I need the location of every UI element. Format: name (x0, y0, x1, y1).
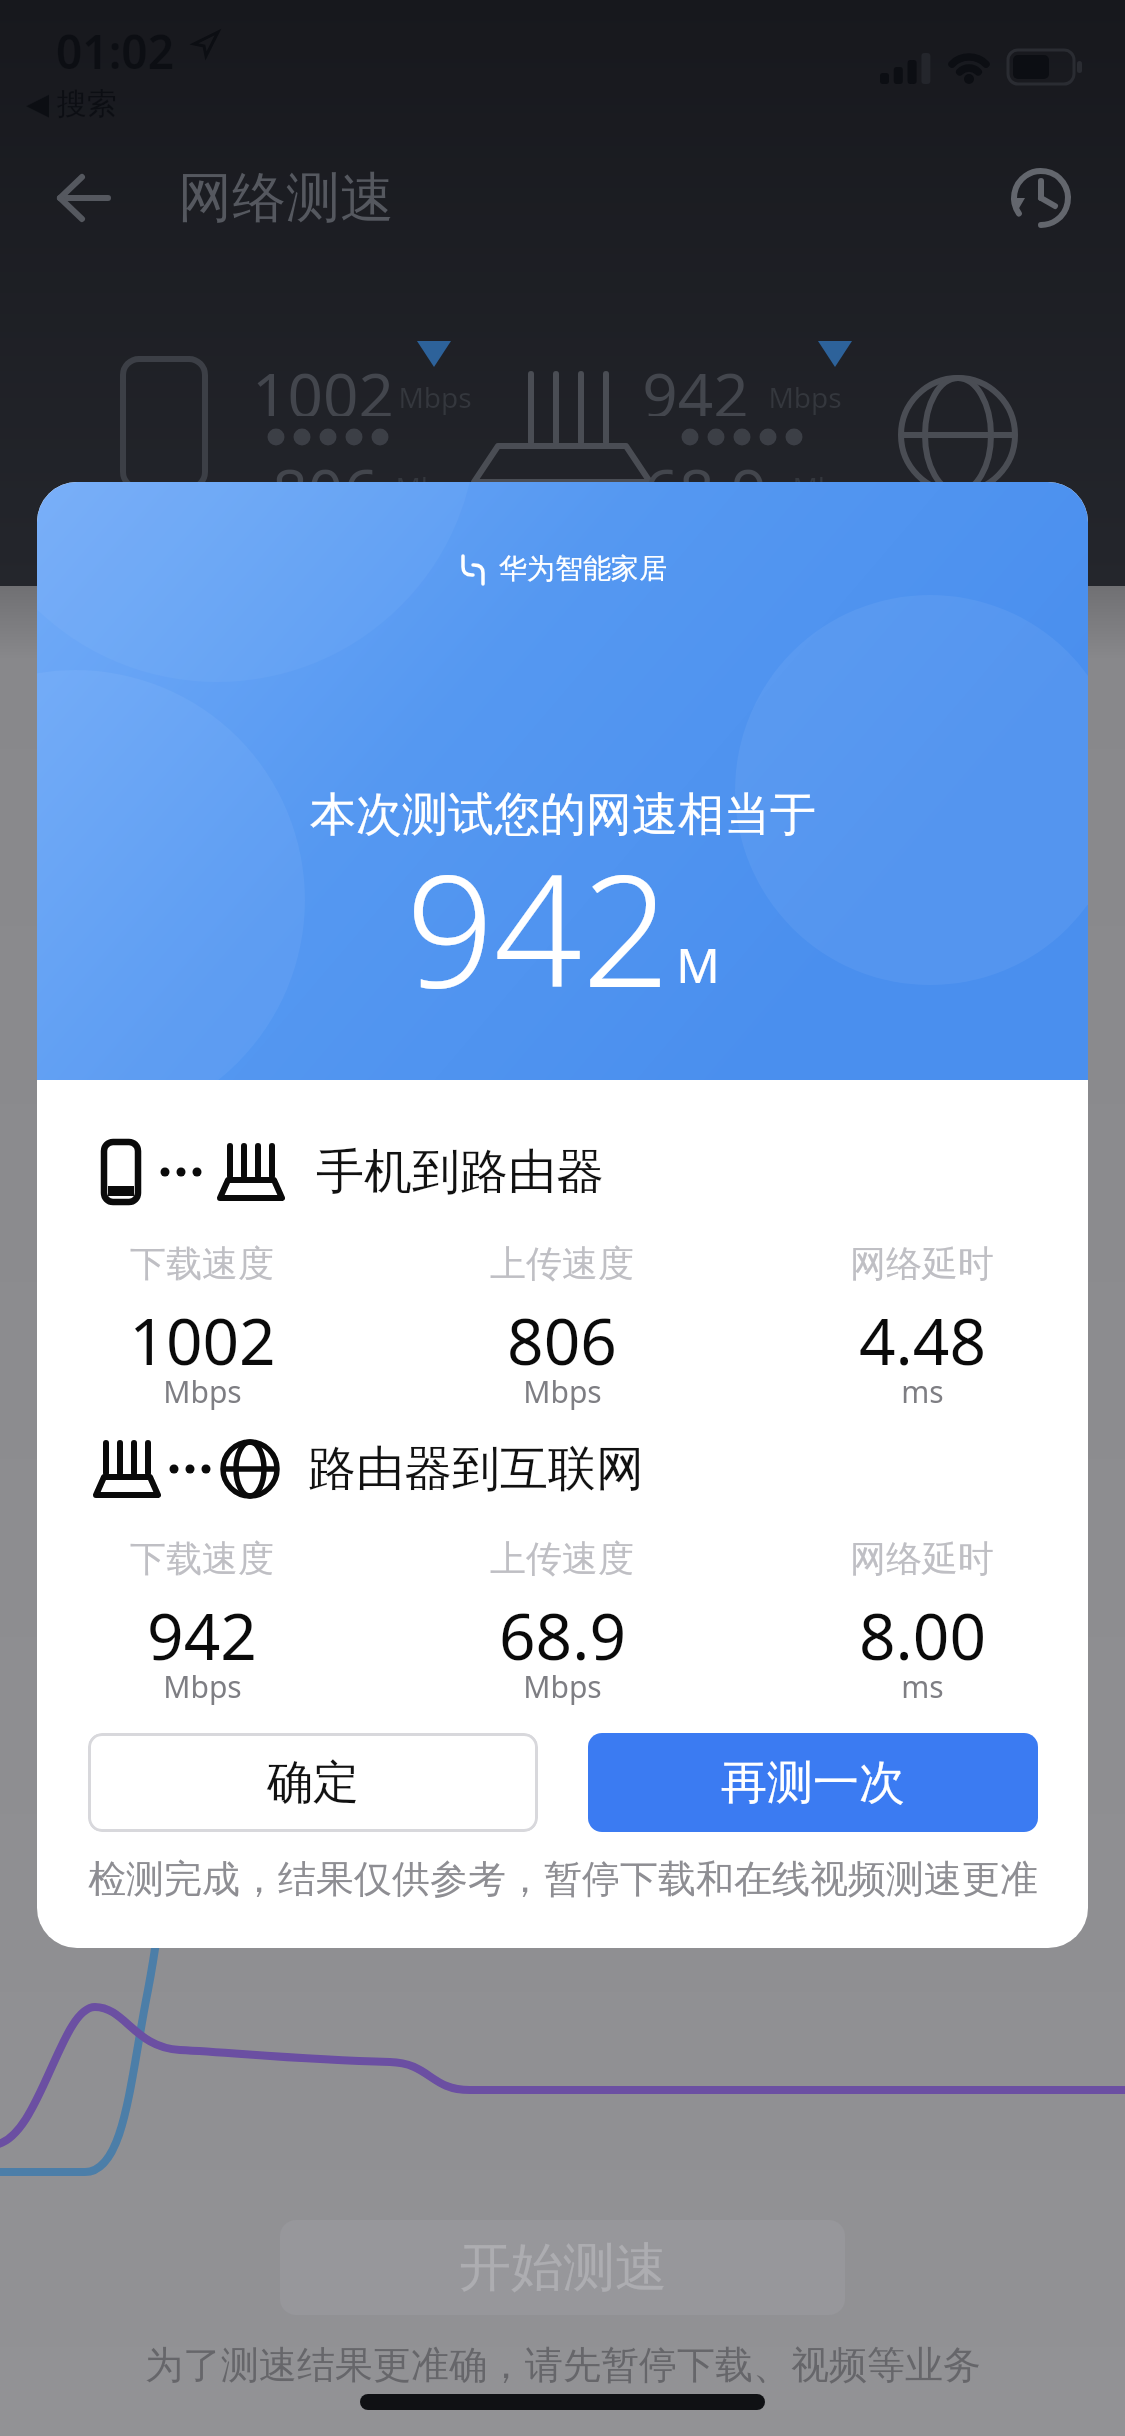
button[interactable]: 开始测速 (280, 2220, 845, 2315)
staticText: Mbps (523, 1371, 602, 1411)
staticText: 1002 (252, 352, 394, 416)
staticText: Mbps (395, 468, 469, 502)
staticText: 路由器到互联网 (308, 1439, 644, 1499)
staticText: 确定 (267, 1754, 359, 1812)
staticText: 上传速度 (490, 1241, 634, 1286)
staticText: ms (901, 1371, 944, 1411)
staticText: Mbps (163, 1371, 242, 1411)
staticText: 8.00 (859, 1592, 986, 1672)
staticText: 检测完成，结果仅供参考，暂停下载和在线视频测速更准 (88, 1855, 1038, 1903)
staticText: Mbps (792, 468, 866, 502)
staticText: 942 (147, 1592, 257, 1672)
button[interactable]: 再测一次 (588, 1733, 1038, 1832)
staticText: 本次测试您的网速相当于 (310, 786, 816, 844)
staticText: 网络测速 (178, 164, 394, 232)
staticText: 1002 (129, 1297, 276, 1377)
staticText: 942 (406, 822, 670, 1012)
staticText: 网络延时 (850, 1536, 994, 1581)
staticText: ◀ 搜索 (26, 82, 117, 122)
button[interactable] (1002, 159, 1080, 237)
staticText: 手机到路由器 (316, 1142, 604, 1202)
staticText: 下载速度 (130, 1241, 274, 1286)
staticText: M (676, 932, 720, 997)
staticText: Mbps (523, 1666, 602, 1706)
staticText: Mbps (768, 378, 842, 416)
staticText: 806 (272, 448, 379, 508)
staticText: 再测一次 (721, 1754, 905, 1812)
button[interactable] (46, 160, 122, 236)
staticText: 942 (642, 352, 749, 416)
staticText: 为了测速结果更准确，请先暂停下载、视频等业务 (145, 2341, 981, 2389)
staticText: 68.9 (643, 448, 767, 508)
staticText: 华为智能家居 (499, 551, 667, 586)
staticText: Mbps (163, 1666, 242, 1706)
staticText: 开始测速 (459, 2235, 667, 2301)
staticText: 网络延时 (850, 1241, 994, 1286)
staticText: 68.9 (499, 1592, 626, 1672)
staticText: 上传速度 (490, 1536, 634, 1581)
staticText: 01:02 (56, 20, 174, 70)
staticText: 下载速度 (130, 1536, 274, 1581)
staticText: Mbps (398, 378, 472, 416)
staticText: ms (901, 1666, 944, 1706)
staticText: 806 (507, 1297, 617, 1377)
button[interactable]: 确定 (88, 1733, 538, 1832)
staticText: 4.48 (859, 1297, 986, 1377)
